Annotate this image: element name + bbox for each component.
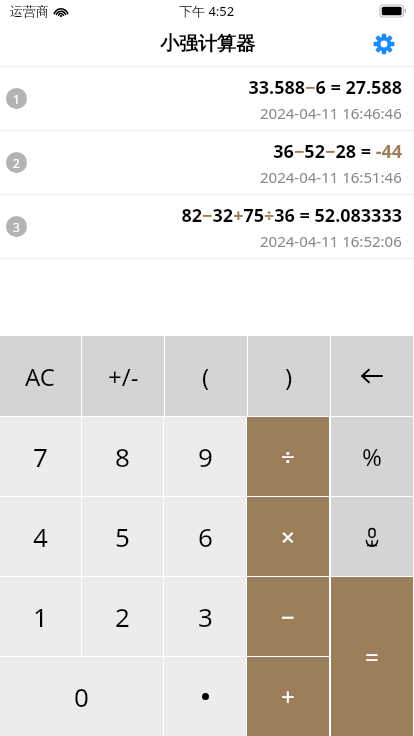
button[interactable]: 8: [82, 417, 163, 496]
button[interactable]: 3: [164, 577, 246, 656]
button[interactable]: %: [331, 417, 413, 496]
staticText: 33.588−6 = 27.588: [248, 75, 402, 100]
button[interactable]: 3: [0, 195, 414, 258]
staticText: ×: [281, 520, 295, 553]
staticText: ): [285, 360, 293, 393]
staticText: +: [281, 680, 295, 713]
staticText: 82−32+75÷36 = 52.083333: [181, 203, 402, 228]
button[interactable]: 7: [0, 417, 81, 496]
button[interactable]: 2: [82, 577, 163, 656]
staticText: AC: [25, 360, 56, 393]
staticText: 5: [115, 519, 130, 554]
button[interactable]: Voice input: [331, 497, 413, 576]
staticText: 6: [198, 519, 213, 554]
staticText: 4: [33, 519, 48, 554]
button[interactable]: +/-: [82, 336, 164, 416]
staticText: 2024-04-11 16:52:06: [260, 231, 402, 251]
button[interactable]: 0: [0, 657, 163, 736]
button[interactable]: Settings: [368, 28, 400, 60]
button[interactable]: 1: [0, 577, 81, 656]
staticText: 2024-04-11 16:46:46: [260, 103, 402, 123]
staticText: (: [202, 360, 210, 393]
button[interactable]: −: [247, 577, 329, 656]
staticText: %: [362, 440, 382, 473]
staticText: 3: [198, 599, 213, 634]
button[interactable]: 6: [164, 497, 246, 576]
button[interactable]: Backspace: [331, 336, 413, 416]
staticText: 0: [74, 679, 89, 714]
staticText: −: [281, 600, 295, 633]
staticText: 2: [13, 155, 20, 171]
staticText: =: [365, 640, 379, 673]
staticText: +/-: [108, 360, 139, 393]
staticText: 下午 4:52: [179, 2, 235, 20]
staticText: 8: [115, 439, 130, 474]
button[interactable]: (: [165, 336, 247, 416]
button[interactable]: =: [331, 577, 413, 736]
staticText: 1: [13, 91, 20, 107]
staticText: 2: [115, 599, 130, 634]
button[interactable]: 4: [0, 497, 81, 576]
staticText: 7: [33, 439, 48, 474]
staticText: 36−52−28 = -44: [273, 139, 402, 164]
staticText: 2024-04-11 16:51:46: [260, 167, 402, 187]
staticText: 9: [198, 439, 213, 474]
button[interactable]: ÷: [247, 417, 329, 496]
button[interactable]: ): [248, 336, 330, 416]
button[interactable]: ×: [247, 497, 329, 576]
button[interactable]: +: [247, 657, 329, 736]
staticText: ÷: [281, 440, 295, 473]
staticText: 3: [13, 219, 20, 235]
button[interactable]: 5: [82, 497, 163, 576]
button[interactable]: Decimal point: [164, 657, 246, 736]
staticText: 小强计算器: [160, 32, 255, 56]
button[interactable]: 9: [164, 417, 246, 496]
staticText: 运营商: [10, 3, 49, 19]
button[interactable]: AC: [0, 336, 81, 416]
button[interactable]: 1: [0, 67, 414, 130]
staticText: 1: [33, 599, 48, 634]
button[interactable]: 2: [0, 131, 414, 194]
